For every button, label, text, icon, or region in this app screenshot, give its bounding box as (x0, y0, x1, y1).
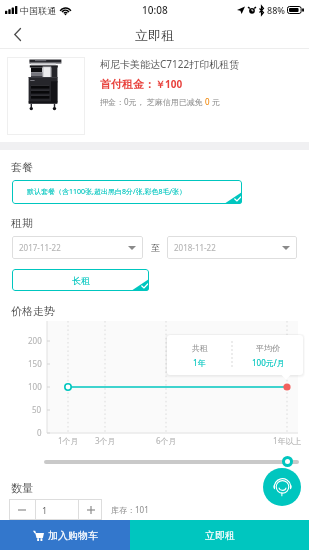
staticText: 柯尼卡美能达C7122打印机租赁 (100, 57, 240, 71)
staticText: 共租 (192, 343, 208, 353)
staticText: 0 (37, 427, 42, 438)
staticText: 3个月 (95, 435, 116, 446)
staticText: 库存：101 (111, 504, 149, 515)
staticText: 首付租金： (100, 77, 155, 91)
button[interactable]: 滑块 (282, 456, 293, 467)
staticText: 数量 (11, 481, 33, 495)
staticText: 元 (210, 96, 221, 107)
staticText: 至 (151, 242, 160, 253)
staticText: 价格走势 (11, 304, 55, 318)
button[interactable]: 2018-11-22 (167, 236, 297, 259)
staticText: 默认套餐（含1100张,超出黑白8分/张,彩色8毛/张） (27, 187, 186, 197)
staticText: 押金：0元， 芝麻信用已减免 (100, 96, 205, 107)
button[interactable]: 加入购物车 (0, 520, 130, 550)
staticText: 立即租 (135, 27, 174, 43)
staticText: 88% (267, 4, 285, 16)
staticText: 2018-11-22 (174, 242, 216, 253)
staticText: 1个月 (58, 435, 79, 446)
button[interactable]: 增加数量 (79, 499, 102, 520)
staticText: 中国联通 (20, 5, 56, 16)
staticText: 1 (42, 504, 48, 516)
staticText: 100 (28, 381, 42, 392)
staticText: 长租 (72, 275, 90, 286)
staticText: 平均价 (256, 343, 280, 353)
staticText: 1年 (193, 357, 206, 368)
staticText: 6个月 (156, 435, 177, 446)
button[interactable]: 减少数量 (9, 499, 35, 520)
button[interactable]: 默认套餐（含1100张,超出黑白8分/张,彩色8毛/张） (12, 180, 242, 204)
button[interactable]: 立即租 (130, 520, 309, 550)
button[interactable]: 返回 (0, 20, 34, 49)
staticText: 0 (205, 96, 210, 107)
staticText: 2017-11-22 (19, 242, 61, 253)
button[interactable]: 2017-11-22 (12, 236, 143, 259)
staticText: 50 (32, 404, 42, 415)
staticText: ￥100 (155, 77, 183, 91)
staticText: 200 (28, 335, 42, 346)
staticText: 100元/月 (252, 357, 285, 368)
button[interactable]: 在线客服 (263, 468, 301, 506)
staticText: 150 (28, 358, 42, 369)
staticText: 立即租 (205, 529, 235, 542)
staticText: 1年以上 (273, 435, 302, 446)
staticText: 套餐 (11, 160, 33, 174)
staticText: 加入购物车 (48, 529, 98, 542)
button[interactable]: 长租 (12, 269, 149, 291)
staticText: 10:08 (142, 3, 168, 17)
staticText: 租期 (11, 216, 33, 230)
